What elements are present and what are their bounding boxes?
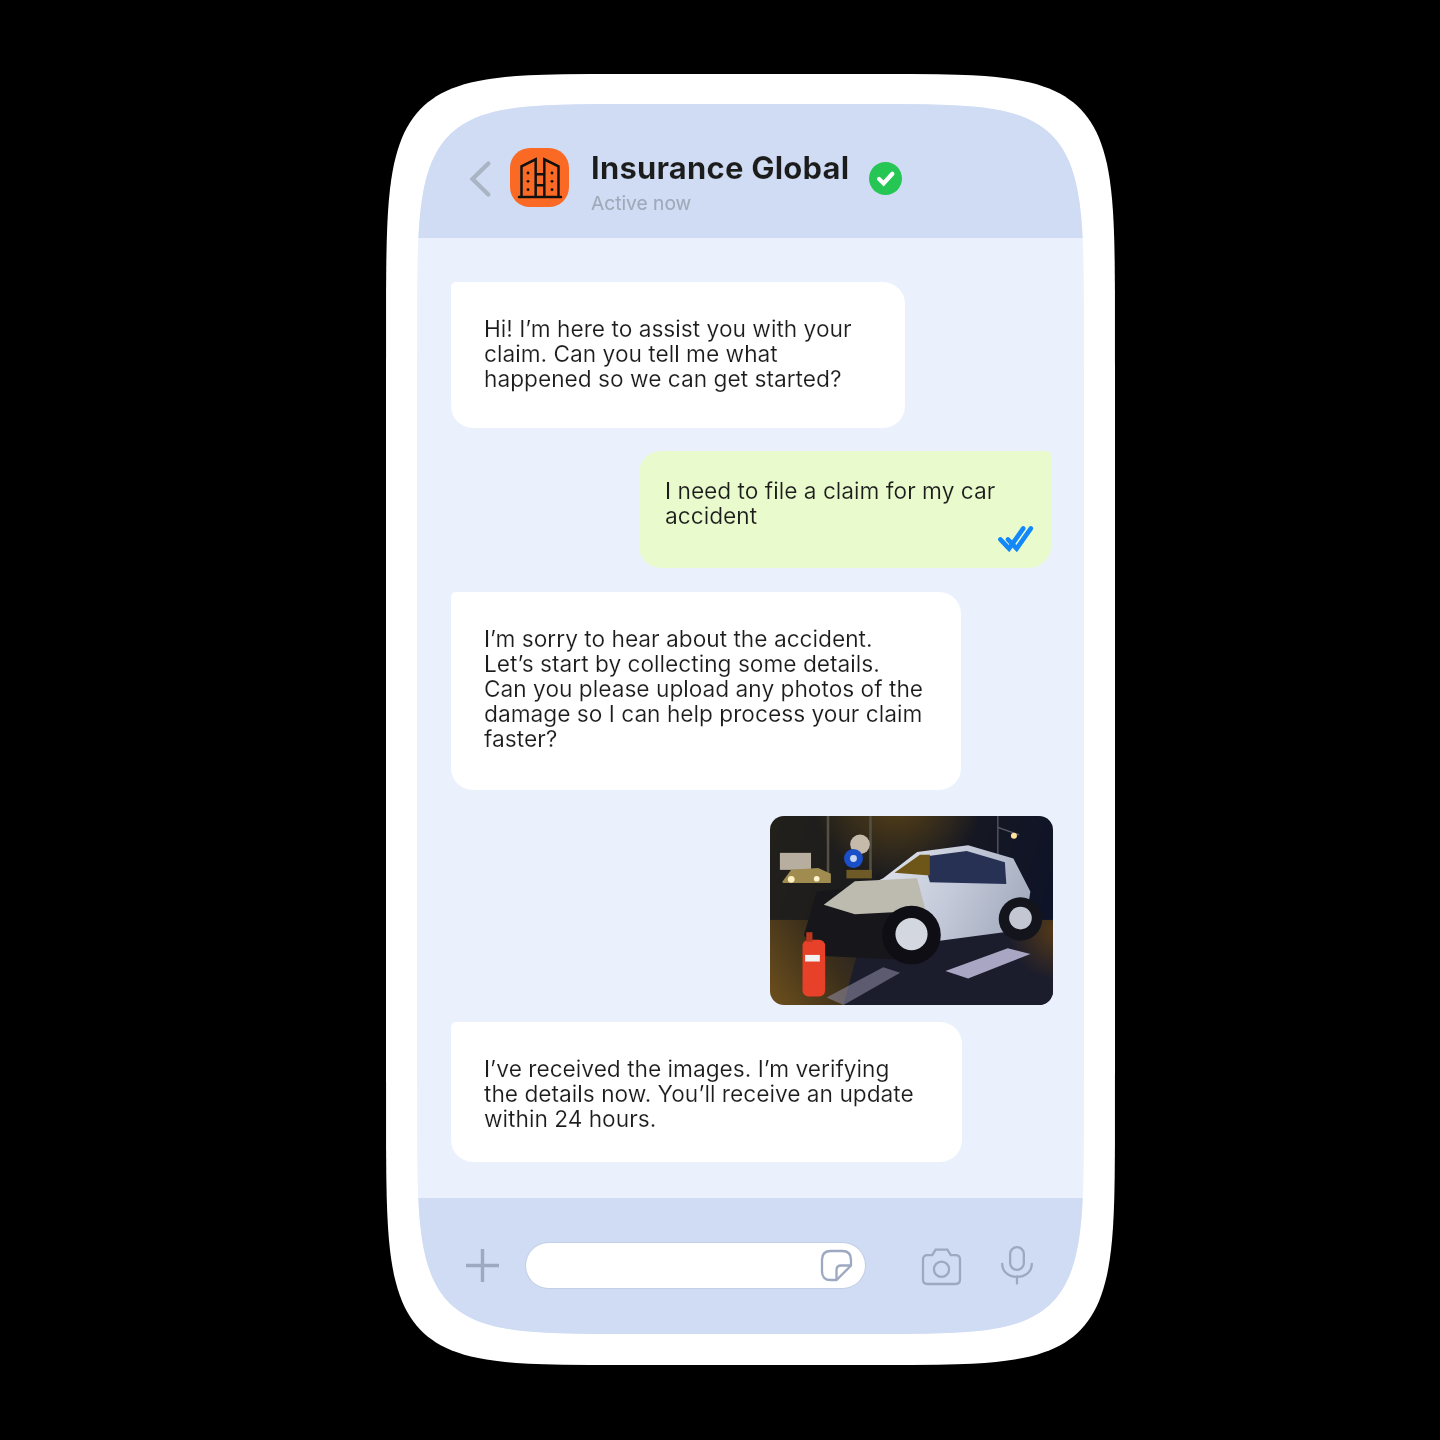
button[interactable]: I’m sorry to hear about the accident. Le… [451, 592, 961, 790]
button[interactable]: Verified [869, 162, 902, 195]
staticText: Active now [591, 191, 692, 214]
staticText: I’ve received the images. I’m verifying … [484, 1055, 914, 1132]
button[interactable]: Message [526, 1243, 865, 1288]
button[interactable]: Voice message [994, 1242, 1040, 1288]
button[interactable]: Camera [918, 1242, 964, 1288]
button[interactable]: Photo of the damaged car [770, 816, 1053, 1005]
button[interactable]: Add attachment [460, 1243, 504, 1287]
staticText: I’m sorry to hear about the accident. Le… [484, 625, 924, 752]
button[interactable]: I need to file a claim for my car accide… [639, 451, 1051, 568]
button[interactable]: Hi! I’m here to assist you with your cla… [451, 282, 905, 428]
staticText: Insurance Global [591, 149, 850, 187]
button[interactable]: I’ve received the images. I’m verifying … [451, 1022, 962, 1162]
button[interactable]: Insurance Global profile [510, 148, 569, 207]
button[interactable]: Back [466, 158, 494, 200]
staticText: Hi! I’m here to assist you with your cla… [484, 315, 852, 392]
staticText: I need to file a claim for my car accide… [665, 477, 996, 529]
